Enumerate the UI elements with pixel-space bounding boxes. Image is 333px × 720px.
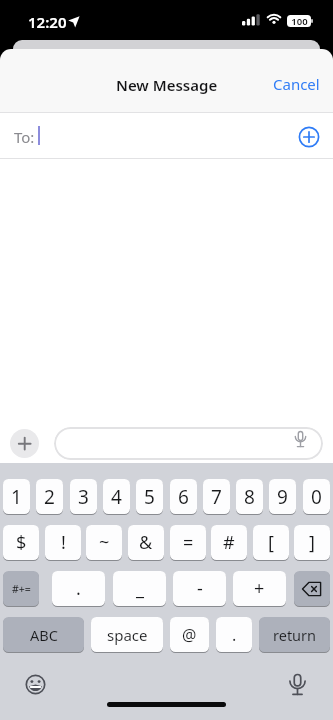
button[interactable]: 4 xyxy=(103,479,130,514)
button[interactable]: 5 xyxy=(136,479,163,514)
staticText: 4 xyxy=(111,484,122,510)
button[interactable]: 1 xyxy=(3,479,30,514)
button[interactable]: ~ xyxy=(86,525,122,560)
button[interactable] xyxy=(25,674,46,695)
button[interactable]: To: xyxy=(0,113,333,158)
button[interactable]: ] xyxy=(294,525,330,560)
staticText: 5 xyxy=(144,484,155,510)
staticText: 6 xyxy=(178,484,189,510)
button[interactable]: # xyxy=(211,525,247,560)
button[interactable]: 0 xyxy=(303,479,330,514)
staticText: @ xyxy=(182,624,197,646)
staticText: To: xyxy=(14,127,35,147)
staticText: ] xyxy=(309,530,315,555)
button[interactable]: 9 xyxy=(269,479,296,514)
button[interactable] xyxy=(294,571,330,606)
staticText: + xyxy=(254,576,265,601)
staticText: - xyxy=(197,576,203,601)
staticText: 9 xyxy=(277,484,288,510)
button[interactable] xyxy=(298,126,320,148)
button[interactable]: 8 xyxy=(236,479,263,514)
staticText: return xyxy=(273,625,317,645)
staticText: $ xyxy=(16,530,27,555)
button[interactable]: 7 xyxy=(203,479,230,514)
staticText: [ xyxy=(268,530,274,555)
staticText: & xyxy=(139,530,153,555)
staticText: 1 xyxy=(11,484,22,510)
staticText: 12:20 xyxy=(28,12,67,32)
button[interactable]: Cancel xyxy=(273,71,325,97)
staticText: . xyxy=(76,576,81,601)
button[interactable]: = xyxy=(170,525,206,560)
button[interactable]: return xyxy=(259,617,330,652)
staticText: 8 xyxy=(244,484,255,510)
button[interactable] xyxy=(288,674,307,696)
staticText: 7 xyxy=(211,484,222,510)
staticText: 0 xyxy=(311,484,322,510)
button[interactable]: space xyxy=(91,617,163,652)
staticText: New Message xyxy=(116,75,218,95)
button[interactable]: _ xyxy=(113,571,166,606)
button[interactable] xyxy=(10,429,39,458)
button[interactable] xyxy=(54,427,323,460)
button[interactable]: - xyxy=(173,571,226,606)
button[interactable]: 3 xyxy=(70,479,97,514)
staticText: ~ xyxy=(99,530,110,555)
staticText: # xyxy=(223,530,235,555)
staticText: _ xyxy=(136,576,144,601)
staticText: . xyxy=(232,624,237,646)
staticText: 3 xyxy=(78,484,89,510)
staticText: ABC xyxy=(30,625,58,645)
staticText: Cancel xyxy=(273,74,320,94)
staticText: space xyxy=(107,625,148,645)
button[interactable]: 6 xyxy=(170,479,197,514)
staticText: 2 xyxy=(44,484,55,510)
staticText: ! xyxy=(61,530,66,555)
button[interactable]: #+= xyxy=(3,571,39,606)
staticText: #+= xyxy=(12,582,31,596)
button[interactable]: + xyxy=(233,571,286,606)
button[interactable]: 2 xyxy=(36,479,63,514)
button[interactable]: & xyxy=(128,525,164,560)
button[interactable]: $ xyxy=(3,525,39,560)
button[interactable]: @ xyxy=(170,617,209,652)
staticText: = xyxy=(183,530,194,555)
button[interactable]: ! xyxy=(45,525,81,560)
button[interactable]: . xyxy=(52,571,105,606)
button[interactable]: [ xyxy=(253,525,289,560)
button[interactable]: . xyxy=(216,617,252,652)
button[interactable]: ABC xyxy=(3,617,84,652)
staticText: 100 xyxy=(291,15,308,27)
